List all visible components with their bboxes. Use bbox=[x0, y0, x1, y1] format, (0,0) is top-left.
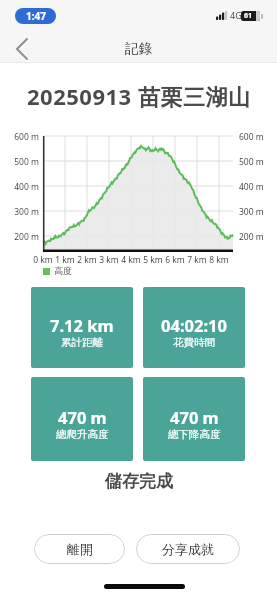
staticText: 7.12 km bbox=[50, 314, 114, 336]
staticText: 20250913 苗栗三湖山 bbox=[27, 81, 251, 111]
staticText: 2 km bbox=[76, 254, 98, 266]
staticText: 7 km bbox=[186, 254, 208, 266]
button[interactable]: 1:47 bbox=[15, 8, 56, 24]
staticText: 600 m bbox=[0, 131, 39, 143]
staticText: 200 m bbox=[0, 231, 39, 243]
button[interactable]: 04:02:10 bbox=[143, 287, 245, 368]
button[interactable] bbox=[6, 36, 36, 62]
staticText: 累計距離 bbox=[61, 336, 103, 349]
staticText: 6 km bbox=[164, 254, 186, 266]
staticText: 總爬升高度 bbox=[56, 428, 109, 441]
staticText: 離開 bbox=[67, 541, 93, 557]
staticText: 4G bbox=[230, 9, 242, 21]
staticText: 儲存完成 bbox=[105, 471, 173, 492]
staticText: 4 km bbox=[120, 254, 142, 266]
staticText: 500 m bbox=[0, 156, 39, 168]
staticText: 記錄 bbox=[125, 40, 152, 57]
staticText: 200 m bbox=[239, 231, 264, 243]
button[interactable]: 470 m bbox=[31, 377, 133, 461]
staticText: 470 m bbox=[170, 406, 219, 428]
staticText: 3 km bbox=[98, 254, 120, 266]
staticText: 400 m bbox=[239, 181, 264, 193]
staticText: 0 km bbox=[32, 254, 54, 266]
staticText: 300 m bbox=[0, 206, 39, 218]
staticText: 470 m bbox=[58, 406, 107, 428]
button[interactable]: 470 m bbox=[143, 377, 245, 461]
staticText: 500 m bbox=[239, 156, 264, 168]
staticText: 分享成就 bbox=[162, 541, 214, 557]
button[interactable]: 分享成就 bbox=[136, 534, 240, 564]
staticText: 1:47 bbox=[26, 9, 46, 23]
button[interactable]: 離開 bbox=[34, 534, 125, 564]
staticText: 300 m bbox=[239, 206, 264, 218]
staticText: 總下降高度 bbox=[168, 428, 221, 441]
staticText: 花費時間 bbox=[173, 336, 215, 349]
button[interactable]: 7.12 km bbox=[31, 287, 133, 368]
staticText: 04:02:10 bbox=[161, 314, 227, 336]
staticText: 1 km bbox=[54, 254, 76, 266]
staticText: 5 km bbox=[142, 254, 164, 266]
staticText: 高度 bbox=[54, 265, 72, 276]
staticText: 61 bbox=[244, 11, 253, 21]
staticText: 400 m bbox=[0, 181, 39, 193]
staticText: 8 km bbox=[208, 254, 230, 266]
staticText: 600 m bbox=[239, 131, 264, 143]
